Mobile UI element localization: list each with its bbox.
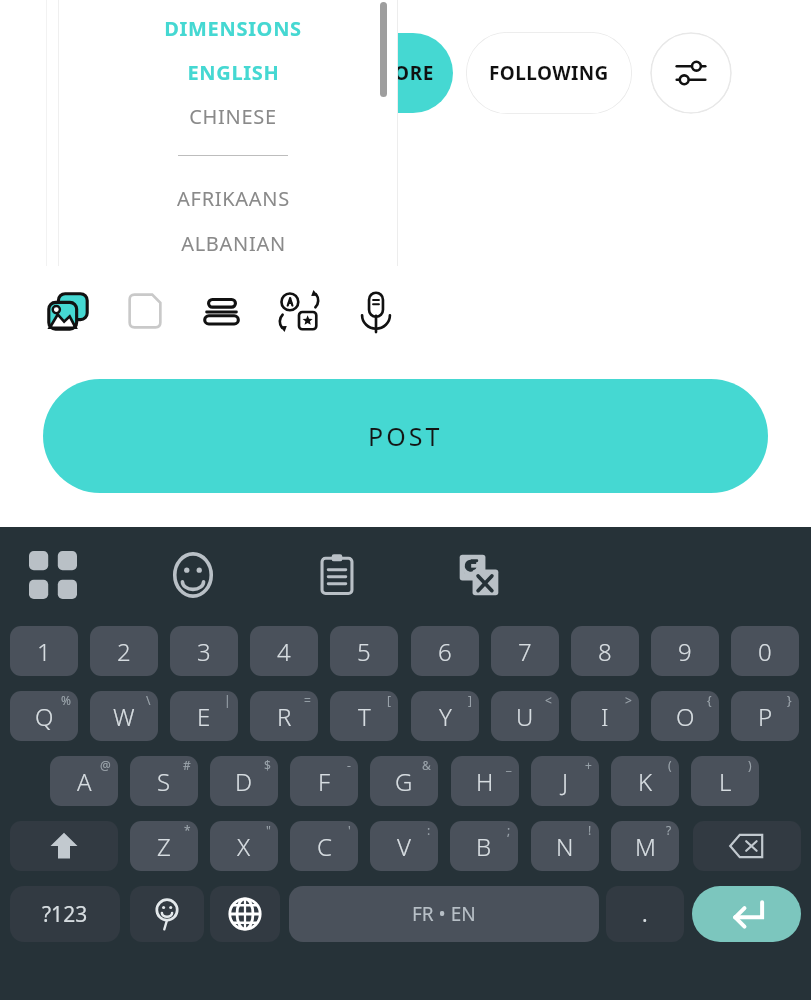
button[interactable]: K [611,756,679,806]
button[interactable]: I [571,691,639,741]
staticText: A [77,765,92,798]
button[interactable]: Translate [269,281,329,341]
staticText: DIMENSIONS [164,15,302,42]
button[interactable]: Filters [650,32,732,114]
staticText: H [476,765,494,798]
staticText: @ [100,757,111,773]
button[interactable]: 8 [571,626,639,676]
staticText: % [61,692,71,708]
staticText: E [197,700,211,733]
staticText: ALBANIAN [181,230,286,257]
button[interactable]: N [531,821,599,871]
button[interactable]: Emoji [164,546,222,604]
button[interactable]: T [330,691,398,741]
button[interactable]: 1 [10,626,78,676]
button[interactable]: 3 [170,626,238,676]
staticText: N [556,830,574,863]
button[interactable]: 4 [250,626,318,676]
button[interactable]: C [290,821,358,871]
button[interactable]: Y [411,691,479,741]
button[interactable]: . [606,886,684,942]
staticText: V [397,830,411,863]
button[interactable]: POST [43,379,768,493]
button[interactable]: ORE [330,33,453,113]
staticText: B [476,830,492,863]
button[interactable]: ?123 [10,886,120,942]
staticText: ? [666,822,672,838]
button[interactable]: F [290,756,358,806]
button[interactable]: 7 [491,626,559,676]
button[interactable]: R [250,691,318,741]
staticText: ' [348,822,351,838]
staticText: : [427,822,431,838]
button[interactable]: Clipboard [308,546,366,604]
staticText: T [358,700,371,733]
staticText: [ [387,692,391,708]
button[interactable]: P [731,691,799,741]
button[interactable]: ENGLISH [68,57,398,87]
button[interactable]: Translate [450,546,508,604]
staticText: FR • EN [412,901,476,927]
staticText: 9 [678,635,692,668]
staticText: C [317,830,332,863]
staticText: X [237,830,251,863]
button[interactable]: H [451,756,519,806]
staticText: W [113,700,135,733]
button[interactable]: E [170,691,238,741]
button[interactable]: Poll [192,281,252,341]
staticText: 2 [117,635,131,668]
staticText: 0 [758,635,772,668]
staticText: F [318,765,331,798]
button[interactable]: ALBANIAN [68,228,398,258]
button[interactable]: G [370,756,438,806]
staticText: 1 [37,635,51,668]
button[interactable]: J [531,756,599,806]
button[interactable]: Q [10,691,78,741]
button[interactable]: CHINESE [68,101,398,131]
staticText: ( [668,757,672,773]
staticText: ] [468,692,472,708]
button[interactable]: V [370,821,438,871]
button[interactable]: 0 [731,626,799,676]
button[interactable]: Apps [24,546,82,604]
button[interactable]: Enter [692,886,801,942]
staticText: FOLLOWING [489,60,609,86]
button[interactable]: Backspace [693,821,801,871]
button[interactable]: DIMENSIONS [68,13,398,43]
button[interactable]: Change language [210,886,280,942]
staticText: & [422,757,431,773]
staticText: I [601,700,609,733]
staticText: 3 [197,635,211,668]
button[interactable]: 6 [411,626,479,676]
button[interactable]: W [90,691,158,741]
button[interactable]: Add photo [38,281,98,341]
button[interactable]: 5 [330,626,398,676]
staticText: ?123 [42,900,88,929]
button[interactable]: Voice [346,281,406,341]
staticText: _ [506,757,512,773]
button[interactable]: L [691,756,759,806]
button[interactable]: U [491,691,559,741]
button[interactable]: O [651,691,719,741]
button[interactable]: A [50,756,118,806]
button[interactable]: FR • EN [289,886,599,942]
button[interactable]: FOLLOWING [466,32,632,114]
staticText: . [642,900,648,929]
button[interactable]: 2 [90,626,158,676]
staticText: U [516,700,534,733]
button[interactable]: 9 [651,626,719,676]
button[interactable]: B [450,821,518,871]
staticText: | [224,692,231,708]
staticText: = [304,692,311,708]
staticText: + [585,757,592,773]
button[interactable]: Shift [10,821,118,871]
button[interactable]: AFRIKAANS [68,183,398,213]
button[interactable]: D [210,756,278,806]
button[interactable]: S [130,756,198,806]
staticText: $ [264,757,271,773]
button[interactable]: X [210,821,278,871]
button[interactable]: M [611,821,679,871]
button[interactable]: Z [130,821,198,871]
button[interactable]: Emoji [130,886,204,942]
button[interactable]: Add GIF [115,281,175,341]
